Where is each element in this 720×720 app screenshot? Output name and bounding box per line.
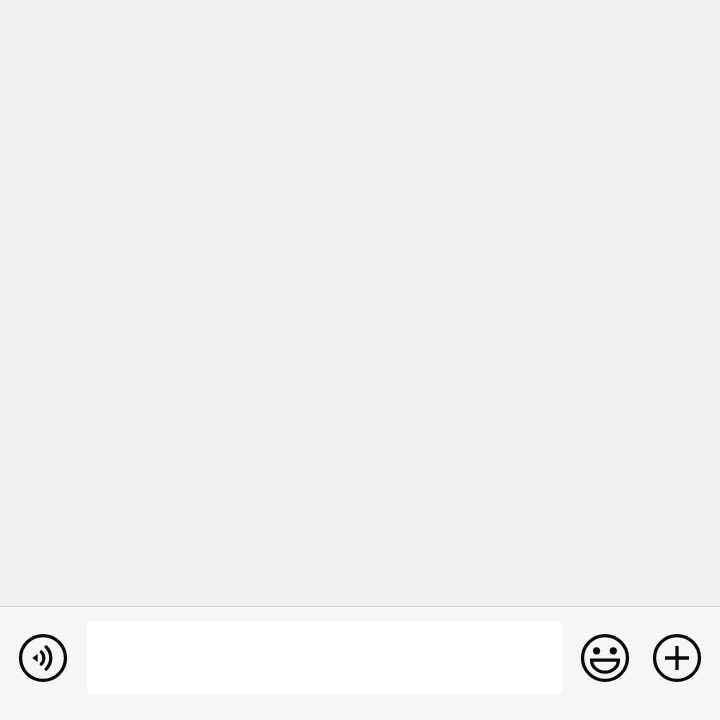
button[interactable]: Record voice message (17, 632, 69, 684)
button[interactable]: Add attachment (651, 632, 703, 684)
button[interactable]: Insert emoji (579, 632, 631, 684)
